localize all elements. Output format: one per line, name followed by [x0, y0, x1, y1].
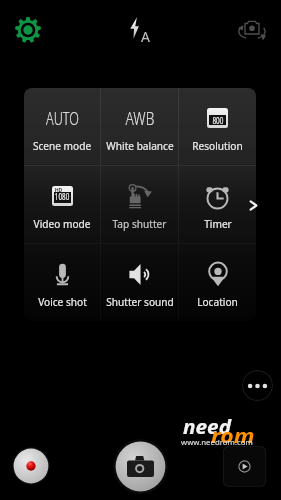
button[interactable]: Location	[179, 244, 256, 321]
staticText: Tap shutter	[112, 216, 167, 231]
staticText: 1080	[55, 192, 70, 204]
button[interactable]: Shutter	[113, 439, 168, 494]
staticText: AWB	[126, 106, 154, 131]
button[interactable]: Gallery	[223, 446, 266, 487]
button[interactable]: Voice shot	[24, 244, 100, 321]
staticText: Resolution	[192, 138, 243, 153]
button[interactable]: Shutter sound	[101, 244, 178, 321]
button[interactable]: Flash auto	[124, 12, 160, 48]
button[interactable]: 800	[179, 88, 256, 165]
staticText: A	[141, 27, 150, 46]
button[interactable]: Record video	[12, 447, 50, 485]
button[interactable]: Timer	[179, 166, 256, 243]
button[interactable]: Switch camera	[233, 12, 271, 48]
button[interactable]: AWB	[101, 88, 178, 165]
staticText: www.needrom.com	[181, 438, 254, 448]
staticText: 800	[212, 115, 224, 125]
staticText: Timer	[204, 216, 232, 231]
button[interactable]: HD	[24, 166, 100, 243]
staticText: Video mode	[33, 216, 90, 231]
staticText: White balance	[106, 138, 174, 153]
button[interactable]: More settings	[244, 193, 262, 217]
staticText: Location	[197, 294, 238, 309]
staticText: HD	[55, 186, 62, 194]
staticText: AUTO	[46, 106, 79, 131]
button[interactable]: More options	[242, 370, 273, 401]
staticText: Voice shot	[38, 294, 87, 309]
button[interactable]: AUTO	[24, 88, 100, 165]
button[interactable]: Tap shutter	[101, 166, 178, 243]
staticText: Shutter sound	[106, 294, 174, 309]
staticText: rom	[211, 423, 256, 448]
staticText: need	[183, 414, 232, 439]
button[interactable]: Settings	[12, 14, 44, 46]
staticText: Scene mode	[33, 138, 91, 153]
